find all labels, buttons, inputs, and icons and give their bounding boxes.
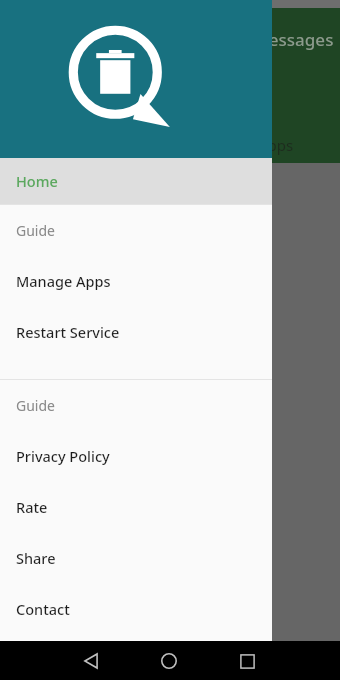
staticText: Contact bbox=[16, 599, 70, 619]
button[interactable]: Back bbox=[74, 644, 108, 678]
staticText: Share bbox=[16, 548, 56, 568]
button[interactable]: Home bbox=[0, 158, 272, 204]
button[interactable]: Privacy Policy bbox=[0, 430, 272, 481]
button[interactable]: Recent apps bbox=[230, 644, 264, 678]
staticText: Rate bbox=[16, 497, 48, 517]
staticText: Home bbox=[16, 171, 58, 191]
staticText: Guide bbox=[16, 396, 55, 415]
button[interactable]: Share bbox=[0, 532, 272, 583]
button[interactable]: Manage Apps bbox=[0, 255, 272, 306]
button[interactable]: Restart Service bbox=[0, 306, 272, 357]
button[interactable]: Home bbox=[152, 644, 186, 678]
staticText: Manage Apps bbox=[16, 271, 111, 291]
button[interactable]: Contact bbox=[0, 583, 272, 634]
staticText: Apps bbox=[258, 135, 294, 155]
staticText: Delete Messages bbox=[196, 28, 334, 51]
staticText: Guide bbox=[16, 221, 55, 240]
staticText: Restart Service bbox=[16, 322, 120, 342]
button[interactable]: Rate bbox=[0, 481, 272, 532]
staticText: Privacy Policy bbox=[16, 446, 110, 466]
